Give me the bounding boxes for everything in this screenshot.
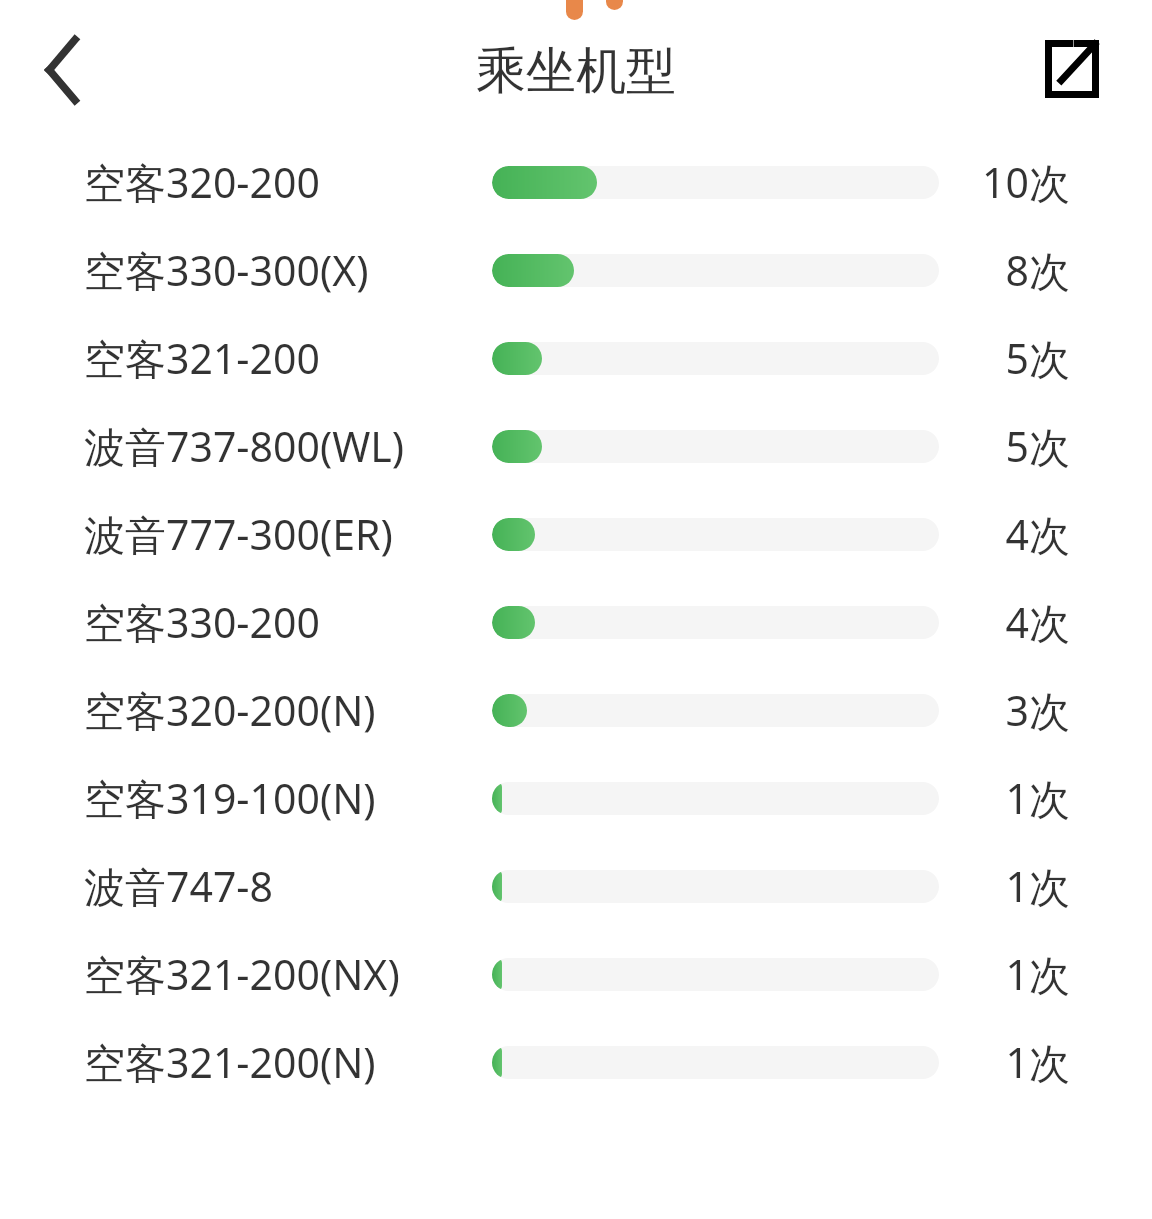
button[interactable]: Back bbox=[18, 26, 110, 114]
staticText: 空客321-200(N) bbox=[84, 1034, 376, 1090]
staticText: 8次 bbox=[1005, 242, 1070, 298]
staticText: 空客319-100(N) bbox=[84, 770, 376, 826]
staticText: 1次 bbox=[1005, 770, 1070, 826]
button[interactable]: 波音747-8 bbox=[0, 842, 1152, 930]
staticText: 5次 bbox=[1005, 330, 1070, 386]
button[interactable]: 空客330-300(X) bbox=[0, 226, 1152, 314]
staticText: 乘坐机型 bbox=[476, 40, 676, 100]
staticText: 波音747-8 bbox=[84, 858, 274, 914]
button[interactable]: 空客320-200(N) bbox=[0, 666, 1152, 754]
staticText: 4次 bbox=[1005, 594, 1070, 650]
staticText: 空客321-200 bbox=[84, 330, 320, 386]
staticText: 1次 bbox=[1005, 858, 1070, 914]
staticText: 空客320-200(N) bbox=[84, 682, 376, 738]
staticText: 空客321-200(NX) bbox=[84, 946, 400, 1002]
button[interactable]: 空客321-200 bbox=[0, 314, 1152, 402]
button[interactable]: 空客320-200 bbox=[0, 138, 1152, 226]
staticText: 4次 bbox=[1005, 506, 1070, 562]
staticText: 波音777-300(ER) bbox=[84, 506, 393, 562]
staticText: 空客330-200 bbox=[84, 594, 320, 650]
button[interactable]: 波音777-300(ER) bbox=[0, 490, 1152, 578]
staticText: 空客330-300(X) bbox=[84, 242, 369, 298]
staticText: 空客320-200 bbox=[84, 154, 320, 210]
button[interactable]: 空客330-200 bbox=[0, 578, 1152, 666]
button[interactable]: 空客321-200(NX) bbox=[0, 930, 1152, 1018]
button[interactable]: Share bbox=[1026, 24, 1118, 114]
button[interactable]: 波音737-800(WL) bbox=[0, 402, 1152, 490]
button[interactable]: 空客319-100(N) bbox=[0, 754, 1152, 842]
staticText: 3次 bbox=[1005, 682, 1070, 738]
staticText: 10次 bbox=[982, 154, 1070, 210]
staticText: 1次 bbox=[1005, 1034, 1070, 1090]
staticText: 1次 bbox=[1005, 946, 1070, 1002]
staticText: 5次 bbox=[1005, 418, 1070, 474]
staticText: 波音737-800(WL) bbox=[84, 418, 405, 474]
button[interactable]: 空客321-200(N) bbox=[0, 1018, 1152, 1106]
